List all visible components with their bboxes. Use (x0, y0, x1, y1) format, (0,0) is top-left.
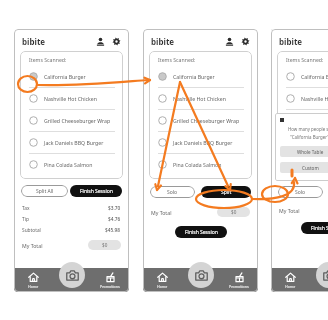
staticText: Tax (22, 205, 30, 212)
staticText: California Burger (44, 73, 86, 80)
staticText: $0 (102, 242, 108, 248)
staticText: Grilled Cheeseburger Wrap (173, 117, 240, 124)
staticText: "California Burger"? (290, 134, 328, 140)
staticText: Finish Session (80, 188, 113, 195)
button[interactable]: Home (143, 268, 182, 292)
button[interactable]: Promotions (91, 268, 129, 292)
staticText: How many people split (288, 126, 328, 132)
button[interactable]: Finish Session (301, 222, 328, 234)
staticText: My Total (279, 207, 300, 214)
button[interactable]: Scan (188, 262, 214, 288)
button[interactable]: Scan (310, 268, 328, 292)
staticText: Nashville Hot Chicken (44, 95, 97, 102)
staticText: Pina Colada Salmon (301, 161, 328, 168)
staticText: Custom (302, 165, 319, 171)
button[interactable]: Grilled Cheeseburger Wrap (24, 110, 119, 131)
button[interactable]: Custom (280, 162, 328, 173)
staticText: Subtotal (22, 227, 41, 234)
button[interactable]: California Burger (281, 66, 328, 87)
staticText: Tip (22, 216, 29, 223)
staticText: Pina Colada Salmon (173, 161, 222, 168)
staticText: bibite (279, 36, 303, 47)
staticText: bibite (22, 36, 46, 47)
button[interactable]: California Burger (153, 66, 248, 87)
staticText: $4.76 (108, 216, 121, 223)
staticText: Solo (167, 189, 178, 196)
staticText: Pina Colada Salmon (44, 161, 93, 168)
staticText: Home (285, 284, 296, 289)
button[interactable]: Jack Daniels BBQ Burger (24, 132, 119, 153)
staticText: Nashville Hot Chicken (173, 95, 226, 102)
button[interactable]: Jack Daniels BBQ Burger (153, 132, 248, 153)
staticText: Promotions (100, 284, 120, 289)
staticText: Finish Session (311, 225, 328, 232)
staticText: Nashville Hot Chicken (301, 95, 328, 102)
button[interactable]: Profile (225, 37, 234, 46)
button[interactable]: Nashville Hot Chicken (24, 88, 119, 109)
staticText: Items Scanned: (29, 56, 67, 63)
button[interactable]: Pina Colada Salmon (24, 154, 119, 175)
staticText: Jack Daniels BBQ Burger (173, 139, 233, 146)
staticText: California Burger (301, 73, 328, 80)
button[interactable]: Home (14, 268, 53, 292)
staticText: $45.98 (105, 227, 121, 234)
button[interactable]: Finish Session (175, 226, 227, 238)
button[interactable]: Whole Table (280, 146, 328, 157)
staticText: California Burger (173, 73, 215, 80)
button[interactable]: Solo (150, 186, 195, 198)
staticText: My Total (151, 209, 172, 216)
staticText: Jack Daniels BBQ Burger (44, 139, 104, 146)
staticText: Finish Session (185, 229, 218, 236)
button[interactable]: Solo (278, 186, 323, 198)
staticText: bibite (151, 36, 175, 47)
staticText: My Total (22, 242, 43, 249)
button[interactable]: Home (271, 268, 310, 292)
staticText: Home (157, 284, 168, 289)
button[interactable]: Jack Daniels BBQ Burger (281, 132, 328, 153)
button[interactable]: Pina Colada Salmon (281, 154, 328, 175)
staticText: Home (28, 284, 39, 289)
button[interactable]: Pina Colada Salmon (153, 154, 248, 175)
button[interactable]: Grilled Cheeseburger Wrap (153, 110, 248, 131)
staticText: $3.70 (108, 205, 121, 212)
button[interactable]: Split (201, 186, 251, 198)
button[interactable]: Scan (53, 268, 91, 292)
staticText: Items Scanned: (286, 56, 324, 63)
staticText: Items Scanned: (158, 56, 196, 63)
button[interactable]: Nashville Hot Chicken (153, 88, 248, 109)
staticText: Solo (295, 189, 306, 196)
button[interactable]: Settings (241, 37, 250, 46)
button[interactable]: Settings (112, 37, 121, 46)
staticText: Grilled Cheeseburger Wrap (44, 117, 111, 124)
button[interactable]: Nashville Hot Chicken (281, 88, 328, 109)
staticText: $0 (231, 209, 237, 215)
button[interactable]: Scan (316, 262, 328, 288)
button[interactable]: Finish Session (70, 185, 122, 197)
button[interactable]: California Burger (24, 66, 119, 87)
staticText: Jack Daniels BBQ Burger (301, 139, 328, 146)
button[interactable]: Profile (96, 37, 105, 46)
button[interactable]: Grilled Cheeseburger Wrap (281, 110, 328, 131)
button[interactable]: Scan (182, 268, 220, 292)
button[interactable]: Scan (59, 262, 85, 288)
button[interactable]: Promotions (220, 268, 258, 292)
staticText: Split All (36, 188, 54, 195)
staticText: Split (221, 189, 232, 196)
staticText: Promotions (229, 284, 249, 289)
staticText: Whole Table (297, 149, 324, 155)
button[interactable]: Split All (21, 185, 68, 197)
